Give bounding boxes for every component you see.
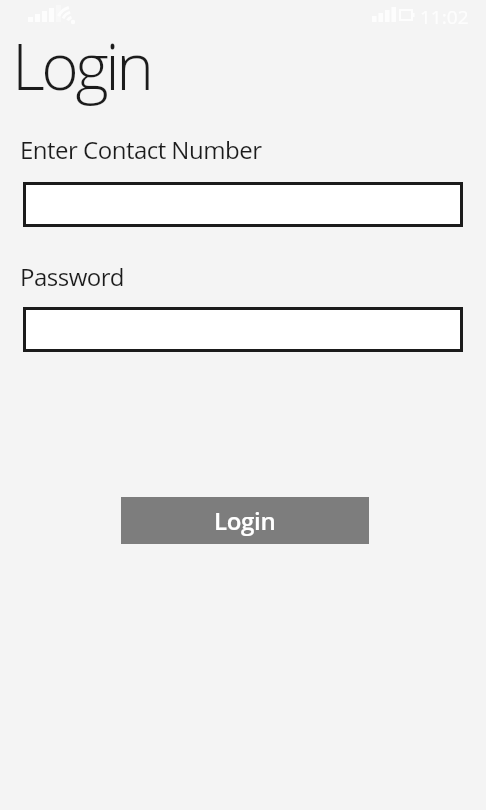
button[interactable] xyxy=(23,307,463,352)
button[interactable] xyxy=(23,182,463,227)
staticText: Enter Contact Number xyxy=(20,133,262,166)
staticText: Login xyxy=(214,504,276,537)
staticText: Password xyxy=(20,260,124,293)
button[interactable]: Login xyxy=(121,497,369,544)
staticText: Login xyxy=(12,22,151,109)
